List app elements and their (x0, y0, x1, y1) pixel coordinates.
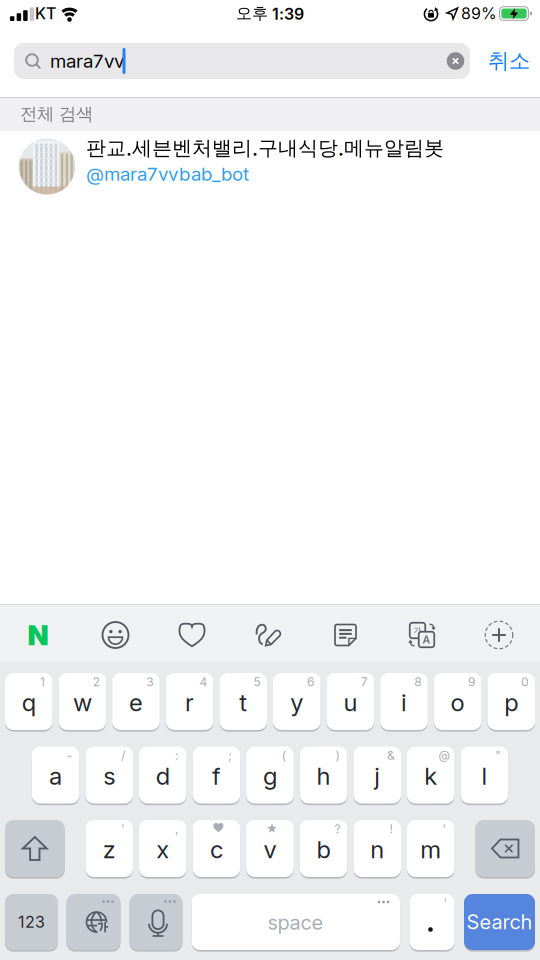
button[interactable]: , (139, 819, 187, 878)
staticText: ; (228, 748, 232, 763)
staticText: v (263, 835, 276, 864)
button[interactable]: Delete (475, 819, 535, 878)
button[interactable]: Translate (409, 622, 435, 648)
staticText: b (317, 835, 331, 864)
staticText: 취소 (488, 48, 530, 74)
staticText: ) (335, 748, 339, 763)
button[interactable]: Notes (334, 623, 357, 646)
button[interactable]: ! (353, 819, 401, 878)
button[interactable]: Stickers (178, 622, 205, 647)
staticText: 전체 검색 (20, 103, 93, 125)
button[interactable]: ' (407, 819, 455, 878)
button[interactable]: mara7vv (14, 43, 470, 79)
staticText: ? (334, 822, 340, 836)
button[interactable]: / (85, 745, 133, 804)
staticText: z (103, 835, 116, 864)
staticText: 8 (414, 675, 421, 689)
button[interactable]: Add feature (484, 620, 514, 650)
staticText: e (129, 688, 143, 717)
button[interactable]: Search (464, 893, 535, 951)
button[interactable]: Naver (27, 618, 48, 651)
button[interactable]: Shift (5, 819, 65, 878)
button[interactable]: 취소 (488, 48, 530, 74)
staticText: / (121, 748, 125, 763)
staticText: 2 (93, 675, 100, 689)
staticText: s (103, 762, 115, 790)
button[interactable]: 7 (327, 672, 374, 731)
staticText: @mara7vvbab_bot (86, 163, 249, 185)
staticText: w (73, 688, 92, 717)
staticText: x (156, 835, 169, 864)
staticText: ' (121, 822, 125, 836)
button[interactable]: Emoji (101, 621, 129, 649)
staticText: 123 (18, 913, 45, 931)
staticText: 4 (199, 675, 207, 689)
button[interactable]: 5 (219, 672, 267, 731)
staticText: N (27, 618, 48, 651)
button[interactable]: v (246, 819, 294, 878)
button[interactable]: ( (246, 745, 294, 804)
staticText: 9 (468, 675, 475, 689)
staticText: 0 (521, 675, 529, 689)
staticText: ! (389, 822, 392, 836)
button[interactable]: 3 (112, 672, 160, 731)
staticText: q (22, 688, 36, 717)
button[interactable]: Next keyboard (66, 893, 120, 951)
button[interactable]: Period (409, 893, 454, 951)
staticText: 89% (461, 4, 497, 23)
button[interactable]: 1 (5, 672, 53, 731)
button[interactable]: space (192, 893, 400, 951)
staticText: , (175, 822, 178, 836)
button[interactable]: 0 (487, 672, 535, 731)
staticText: i (401, 688, 407, 717)
staticText: - (66, 748, 72, 763)
staticText: 오후 1:39 (236, 4, 304, 23)
button[interactable]: " (461, 745, 508, 804)
staticText: 판교.세븐벤처밸리.구내식당.메뉴알림봇 (86, 136, 444, 160)
button[interactable]: Dictation (129, 893, 182, 951)
staticText: ( (282, 748, 286, 763)
staticText: a (49, 762, 62, 790)
staticText: h (317, 762, 331, 790)
button[interactable]: Handwriting (254, 623, 282, 647)
button[interactable]: Clear text (447, 52, 464, 70)
staticText: n (370, 835, 384, 864)
button[interactable]: 4 (166, 672, 213, 731)
staticText: A (422, 633, 430, 646)
staticText: m (420, 835, 441, 864)
button[interactable]: ? (300, 819, 347, 878)
staticText: j (374, 762, 380, 790)
button[interactable]: 8 (380, 672, 428, 731)
staticText: f (212, 762, 221, 790)
staticText: 가 (413, 625, 421, 635)
staticText: 5 (253, 675, 260, 689)
button[interactable]: ; (193, 745, 240, 804)
staticText: ' (443, 896, 447, 910)
button[interactable]: 9 (434, 672, 481, 731)
staticText: d (156, 762, 170, 790)
button[interactable]: @ (407, 745, 455, 804)
staticText: t (239, 688, 247, 717)
staticText: l (481, 762, 487, 790)
staticText: mara7vv (50, 50, 124, 72)
staticText: p (504, 688, 518, 717)
button[interactable]: & (353, 745, 401, 804)
button[interactable]: Numbers (5, 893, 58, 951)
button[interactable]: c (193, 819, 240, 878)
staticText: u (343, 688, 357, 717)
staticText: : (175, 748, 178, 763)
button[interactable]: 6 (273, 672, 321, 731)
staticText: c (210, 835, 223, 864)
staticText: Search (466, 910, 532, 934)
button[interactable]: : (139, 745, 187, 804)
button[interactable]: ' (85, 819, 133, 878)
staticText: 3 (146, 675, 153, 689)
staticText: y (290, 688, 303, 717)
staticText: r (185, 688, 194, 717)
button[interactable]: 2 (59, 672, 106, 731)
staticText: space (268, 911, 324, 934)
button[interactable]: ) (300, 745, 347, 804)
button[interactable]: - (32, 745, 79, 804)
staticText: 7 (361, 675, 368, 689)
button[interactable]: 판교.세븐벤처밸리.구내식당.메뉴알림봇 (0, 131, 540, 208)
